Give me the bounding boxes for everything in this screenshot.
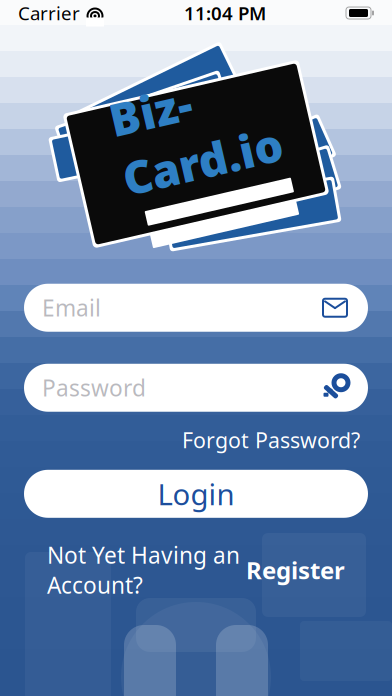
button[interactable]: Not Yet Having an Account? — [47, 540, 345, 600]
staticText: Not Yet Having an Account? — [47, 540, 240, 600]
button[interactable]: Password — [24, 364, 368, 412]
staticText: Login — [157, 474, 234, 513]
staticText: Biz-Card.io — [119, 72, 282, 192]
staticText: Password — [42, 373, 146, 403]
staticText: Carrier — [18, 1, 80, 25]
button[interactable]: Forgot Password? — [182, 426, 360, 454]
staticText: 11:04 PM — [184, 1, 266, 25]
staticText: Email — [42, 293, 101, 323]
staticText: Forgot Password? — [182, 426, 360, 454]
button[interactable]: Login — [24, 470, 368, 518]
button[interactable]: Email — [24, 284, 368, 332]
staticText: Register — [246, 554, 345, 586]
